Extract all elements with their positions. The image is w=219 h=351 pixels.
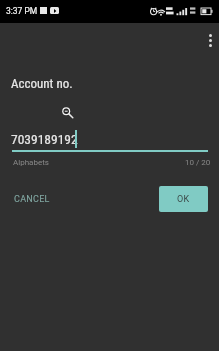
- button[interactable]: OK: [159, 186, 208, 212]
- staticText: 3:37 PM: [6, 6, 38, 16]
- button[interactable]: Zoom out: [59, 104, 75, 120]
- staticText: OK: [177, 194, 190, 205]
- staticText: 10 / 20: [185, 158, 211, 167]
- staticText: Account no.: [11, 76, 73, 91]
- staticText: CANCEL: [14, 194, 50, 205]
- button[interactable]: CANCEL: [10, 186, 54, 212]
- button[interactable]: More options: [198, 28, 219, 52]
- staticText: Alphabets: [13, 158, 49, 167]
- staticText: 7039189192: [11, 131, 78, 147]
